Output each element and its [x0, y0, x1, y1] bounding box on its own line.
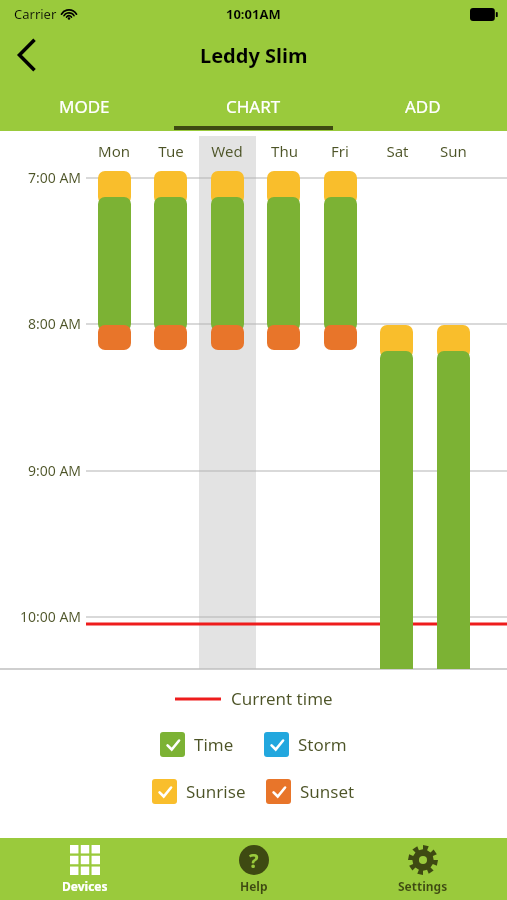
button[interactable]: Sunrise — [152, 779, 246, 804]
staticText: Sun — [440, 141, 467, 161]
button[interactable]: Time — [160, 732, 234, 757]
staticText: 8:00 AM — [28, 314, 82, 333]
staticText: 10:01AM — [226, 5, 281, 23]
staticText: Storm — [298, 733, 347, 756]
staticText: Leddy Slim — [200, 42, 308, 69]
staticText: Time — [194, 733, 234, 756]
staticText: ? — [249, 847, 259, 874]
staticText: Sunset — [300, 780, 355, 803]
staticText: MODE — [59, 95, 110, 118]
staticText: Help — [240, 878, 268, 894]
staticText: Mon — [98, 141, 130, 161]
staticText: 7:00 AM — [28, 168, 82, 187]
button[interactable]: Sunset — [266, 779, 355, 804]
button[interactable]: MODE — [0, 82, 169, 131]
button[interactable]: Back — [0, 28, 54, 82]
staticText: Tue — [158, 141, 184, 161]
button[interactable]: Storm — [264, 732, 347, 757]
staticText: Sat — [386, 141, 409, 161]
staticText: 10:00 AM — [20, 607, 82, 626]
staticText: Thu — [271, 141, 298, 161]
staticText: Current time — [231, 687, 333, 710]
staticText: ADD — [405, 95, 441, 118]
button[interactable]: ADD — [338, 82, 507, 131]
staticText: Wed — [211, 141, 243, 161]
staticText: Fri — [331, 141, 349, 161]
button[interactable]: CHART — [169, 82, 338, 131]
staticText: CHART — [226, 95, 281, 118]
staticText: 9:00 AM — [28, 461, 82, 480]
button[interactable]: Settings — [338, 838, 507, 900]
staticText: Devices — [62, 878, 108, 894]
staticText: Sunrise — [186, 780, 246, 803]
button[interactable]: ? — [169, 838, 338, 900]
staticText: Settings — [398, 878, 448, 894]
button[interactable]: Devices — [0, 838, 169, 900]
staticText: Carrier — [14, 5, 57, 23]
